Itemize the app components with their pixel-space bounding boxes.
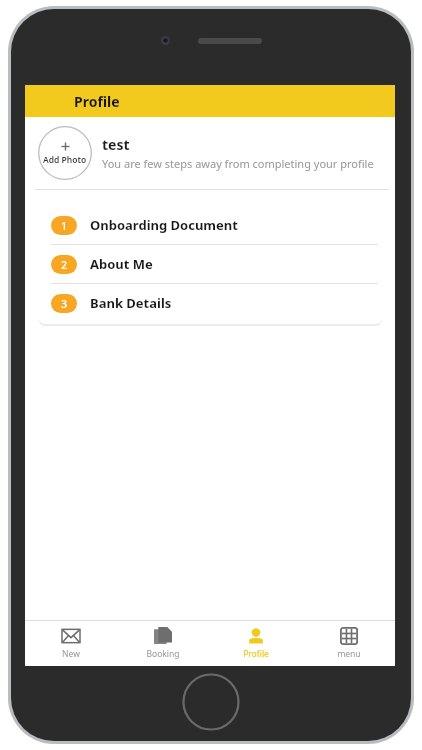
staticText: menu [337,648,361,660]
staticText: New [62,648,80,660]
staticText: Add Photo [43,154,87,166]
button[interactable]: 1 [39,206,382,245]
button[interactable]: Add Photo [25,117,395,189]
staticText: You are few steps away from completing y… [102,156,374,171]
staticText: 3 [61,297,67,311]
button[interactable]: Profile [209,627,302,660]
staticText: 2 [61,258,67,272]
button[interactable]: Add Photo [38,126,92,180]
staticText: Profile [243,648,269,660]
button[interactable]: Booking [117,627,209,660]
button[interactable]: 3 [39,284,382,322]
staticText: test [102,135,130,154]
staticText: Booking [146,648,180,660]
button[interactable]: menu [302,627,395,660]
staticText: Onboarding Document [90,216,238,234]
staticText: Bank Details [90,294,172,312]
staticText: About Me [90,255,153,273]
staticText: 1 [61,219,67,233]
button[interactable]: 2 [39,245,382,284]
staticText: Profile [74,92,120,111]
button[interactable]: New [25,627,117,660]
